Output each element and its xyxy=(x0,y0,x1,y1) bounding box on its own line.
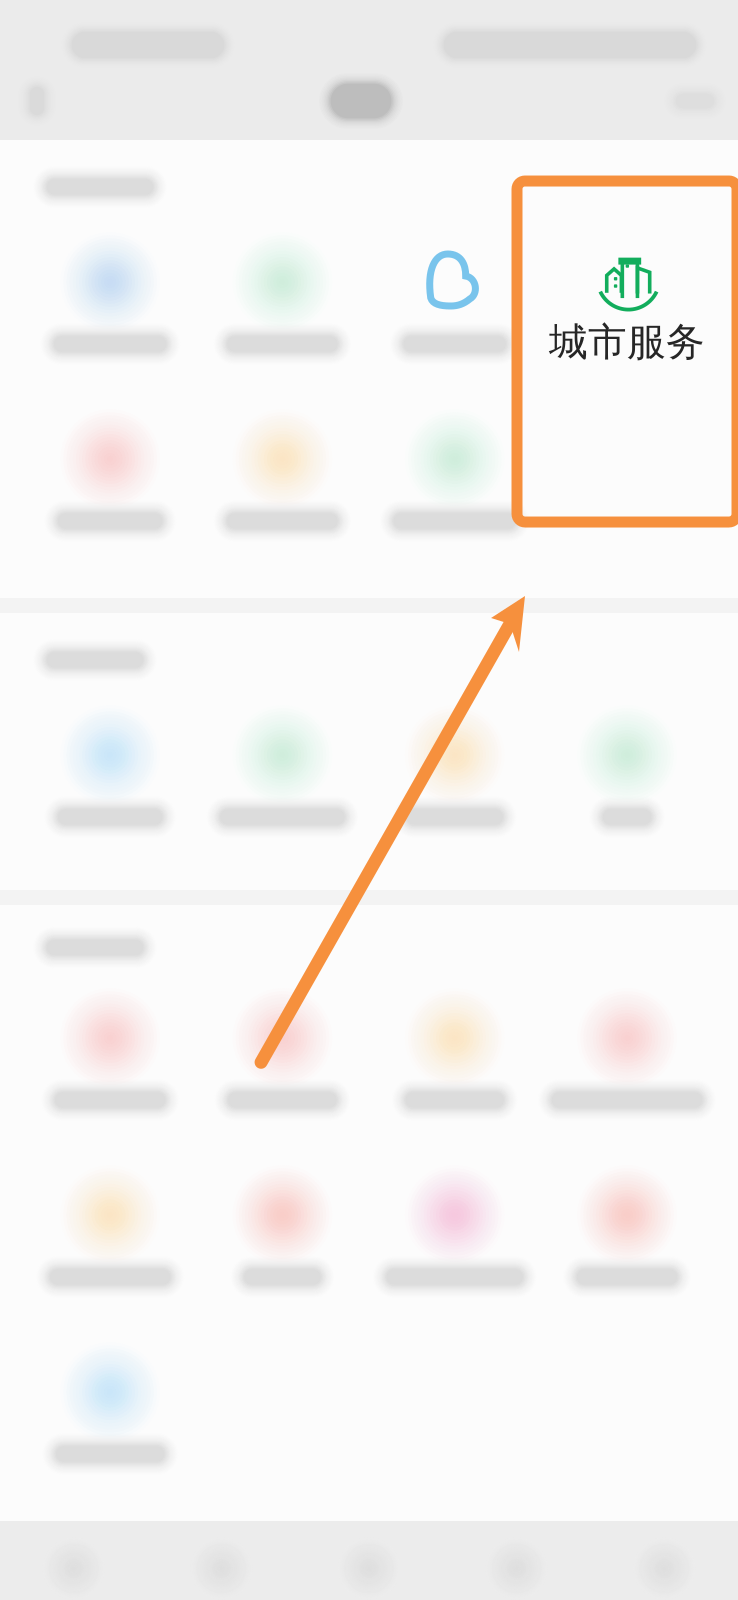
button[interactable]: 城市服务 xyxy=(541,234,713,411)
button[interactable]: Back xyxy=(0,64,74,138)
button[interactable]: Service xyxy=(24,707,196,884)
button[interactable]: Service xyxy=(369,707,541,884)
button[interactable]: Service xyxy=(24,1344,196,1521)
button[interactable]: Service xyxy=(24,411,196,588)
button[interactable]: Service xyxy=(196,707,369,884)
button[interactable]: Service xyxy=(196,234,369,411)
button[interactable]: Service xyxy=(369,990,541,1167)
button[interactable]: Service xyxy=(196,1167,369,1344)
button[interactable]: Service xyxy=(24,234,196,411)
button[interactable]: Service xyxy=(541,990,713,1167)
button[interactable]: Service xyxy=(24,1167,196,1344)
button[interactable]: Service xyxy=(369,1167,541,1344)
button[interactable]: Service xyxy=(369,411,541,588)
button[interactable]: Service xyxy=(369,234,541,411)
button[interactable]: Service xyxy=(24,990,196,1167)
button[interactable]: More xyxy=(658,64,732,138)
staticText: 城市服务 xyxy=(549,318,705,366)
button[interactable]: Service xyxy=(196,990,369,1167)
button[interactable]: Service xyxy=(196,411,369,588)
button[interactable]: Service xyxy=(541,1167,713,1344)
button[interactable]: Service xyxy=(541,707,713,884)
